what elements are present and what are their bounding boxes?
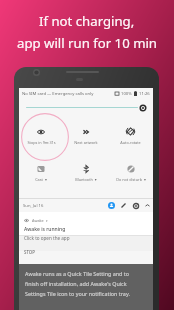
button[interactable]: STOP <box>24 249 35 255</box>
staticText: Auto-rotate <box>120 140 141 145</box>
button[interactable]: Next artwork <box>63 117 108 155</box>
staticText: Next artwork <box>74 140 98 145</box>
staticText: Awake <box>32 218 44 223</box>
staticText: app will run for 10 min <box>17 34 158 52</box>
staticText: No SIM card — Emergency calls only <box>22 91 94 97</box>
staticText: Do not disturb ▾ <box>116 177 146 182</box>
staticText: Cast ▾ <box>35 177 47 182</box>
staticText: ▾ <box>46 219 48 222</box>
staticText: Stops in 9m:31s <box>27 140 56 145</box>
staticText: STOP <box>24 249 35 255</box>
button[interactable]: Do not disturb ▾ <box>108 155 153 192</box>
button[interactable]: Collapse <box>144 202 151 209</box>
staticText: Bluetooth ▾ <box>75 177 97 182</box>
staticText: Sun, Jul 16 <box>23 203 44 209</box>
button[interactable]: Settings <box>132 202 139 209</box>
staticText: 11:26 <box>139 91 150 97</box>
button[interactable]: Auto-rotate <box>108 117 153 155</box>
button[interactable]: Cast ▾ <box>19 155 63 192</box>
staticText: Awake is running <box>24 226 66 233</box>
button[interactable]: Stops in 9m:31s <box>19 117 63 155</box>
staticText: If not charging, <box>39 12 135 30</box>
button[interactable]: Bluetooth ▾ <box>63 155 108 192</box>
button[interactable]: Edit <box>120 202 127 209</box>
button[interactable]: Account <box>108 202 115 209</box>
staticText: Awake runs as a Quick Tile Setting and t… <box>25 270 130 297</box>
staticText: Click to open the app <box>24 235 70 241</box>
staticText: 100% <box>121 91 132 97</box>
